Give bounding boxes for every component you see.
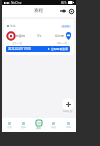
staticText: 英超 [10, 24, 16, 28]
staticText: 切尔西 [55, 34, 64, 38]
staticText: 资讯 [51, 126, 56, 129]
button[interactable]: Add [62, 98, 74, 110]
staticText: 客场 10胜 [52, 42, 72, 45]
staticText: 创建比赛 [63, 110, 73, 113]
staticText: 86% [61, 1, 67, 5]
button[interactable]: 赛程 [31, 118, 46, 132]
staticText: NoOne [11, 1, 22, 5]
staticText: 立即观看直播 [51, 47, 68, 51]
button[interactable]: 2022-02-09 17:00 [6, 46, 70, 52]
staticText: 赛程 [36, 127, 41, 130]
button[interactable]: Filter [59, 7, 67, 15]
staticText: 数据 [21, 126, 26, 129]
staticText: 2022-02-09 17:00 [8, 47, 31, 51]
staticText: 首页 [7, 126, 12, 129]
button[interactable]: 资讯 [46, 118, 61, 132]
staticText: 我的 [66, 126, 71, 129]
staticText: 阿森纳 [16, 34, 25, 38]
staticText: 主场 12胜 [7, 42, 27, 45]
button[interactable]: 数据 [16, 118, 31, 132]
staticText: 赛程 [34, 8, 44, 14]
button[interactable]: 我的 [61, 118, 76, 132]
button[interactable]: 英超 [4, 19, 74, 55]
button[interactable]: Settings [67, 7, 75, 15]
staticText: 未开始 [62, 25, 70, 28]
staticText: Vs [37, 33, 42, 39]
button[interactable]: 首页 [2, 118, 16, 132]
